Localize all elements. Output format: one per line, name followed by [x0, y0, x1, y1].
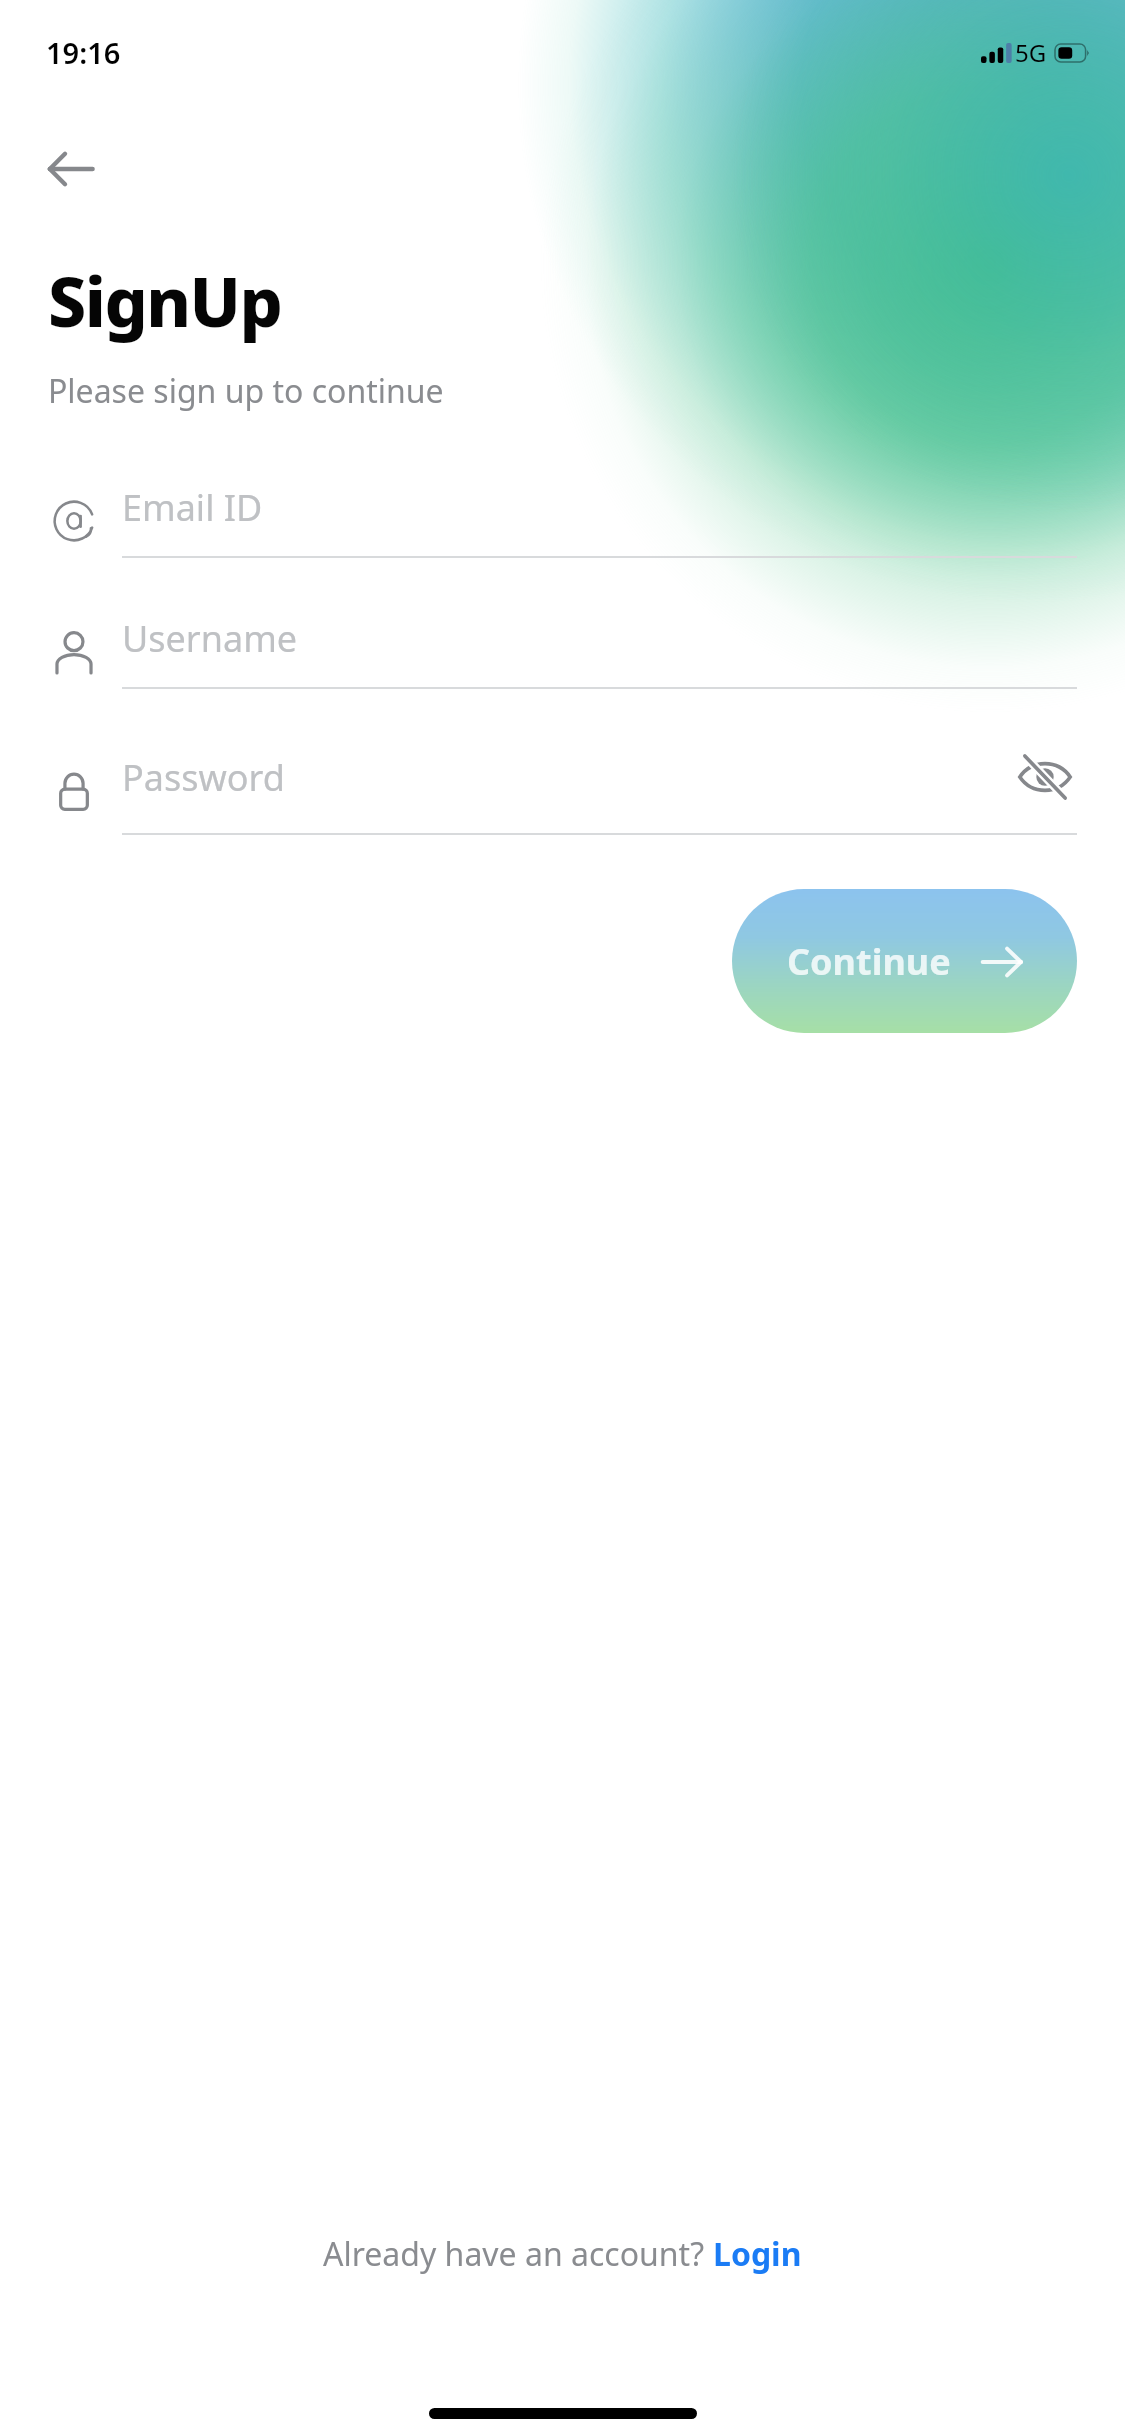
button[interactable]: Back [30, 128, 112, 210]
staticText: SignUp [48, 254, 282, 347]
staticText: Please sign up to continue [48, 369, 444, 413]
staticText: Password [122, 753, 1013, 802]
button[interactable]: Email ID [48, 483, 1077, 558]
staticText: 19:16 [46, 33, 121, 72]
staticText: Login [713, 2232, 802, 2276]
staticText: Continue [787, 937, 951, 986]
staticText: Already have an account? [323, 2232, 713, 2276]
staticText: Username [122, 614, 1077, 663]
staticText: 5G [1015, 36, 1047, 69]
button[interactable]: Password [48, 745, 1077, 835]
button[interactable]: Username [48, 614, 1077, 689]
staticText: Email ID [122, 483, 1077, 532]
button[interactable]: Already have an account? [307, 2222, 818, 2286]
button[interactable]: Continue [732, 889, 1077, 1033]
button[interactable]: Toggle password visibility [1013, 745, 1077, 809]
